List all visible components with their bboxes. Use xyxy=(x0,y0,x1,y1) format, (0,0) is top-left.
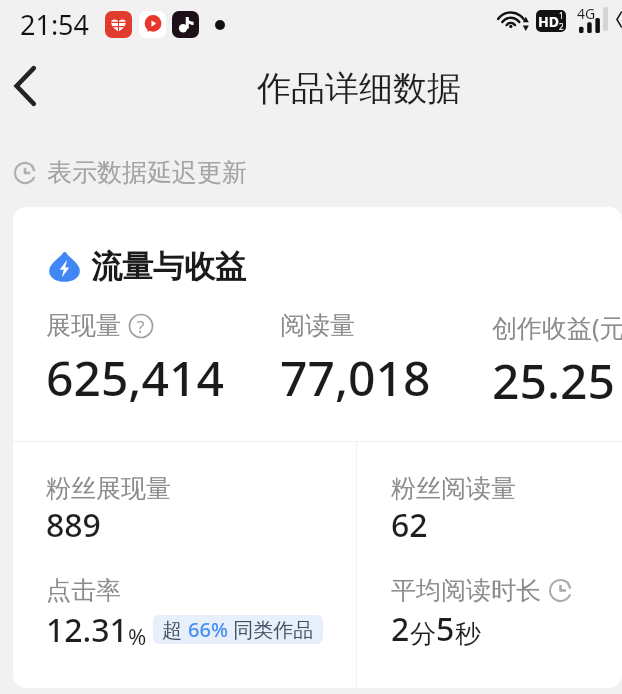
button[interactable]: 平均阅读时长 2分5秒 xyxy=(358,558,622,668)
staticText: 粉丝展现量 xyxy=(46,473,171,504)
button[interactable]: Back xyxy=(0,61,50,111)
staticText: 点击率 xyxy=(46,575,121,606)
staticText: 表示数据延迟更新 xyxy=(47,157,247,188)
staticText: 21:54 xyxy=(20,6,90,43)
staticText: 77,018 xyxy=(280,345,431,410)
staticText: 2 xyxy=(559,21,564,32)
staticText: 平均阅读时长 xyxy=(391,575,541,606)
button[interactable]: 创作收益 25.25 元 xyxy=(479,294,622,414)
staticText: 66% xyxy=(188,616,228,643)
staticText: 5 xyxy=(436,607,455,651)
staticText: % xyxy=(128,621,147,651)
staticText: 分 xyxy=(410,618,436,651)
staticText: 2 xyxy=(391,607,410,651)
button[interactable]: 阅读量 77,018 xyxy=(267,294,479,414)
staticText: 粉丝阅读量 xyxy=(391,473,516,504)
staticText: ? xyxy=(137,315,145,338)
staticText: 25.25 xyxy=(492,348,615,413)
staticText: 展现量 xyxy=(46,310,121,341)
staticText: 62 xyxy=(391,503,428,547)
button[interactable]: 点击率 12.31% xyxy=(14,558,356,668)
staticText: 超 xyxy=(162,616,188,643)
staticText: 创作收益(元) xyxy=(492,310,622,344)
staticText: 1 xyxy=(559,10,564,21)
staticText: 秒 xyxy=(455,618,481,651)
staticText: 889 xyxy=(46,503,101,547)
staticText: 12.31 xyxy=(46,608,128,652)
staticText: 同类作品 xyxy=(228,616,314,643)
button[interactable]: 粉丝展现量 889 xyxy=(14,448,356,558)
staticText: 4G xyxy=(577,4,596,23)
staticText: 流量与收益 xyxy=(91,247,246,286)
staticText: 作品详细数据 xyxy=(257,67,461,110)
button[interactable]: 粉丝阅读量 62 xyxy=(358,448,622,558)
button[interactable]: 展现量 625,414 xyxy=(33,294,265,414)
staticText: 阅读量 xyxy=(280,310,355,341)
staticText: 625,414 xyxy=(46,345,224,410)
staticText: HD xyxy=(538,12,559,31)
